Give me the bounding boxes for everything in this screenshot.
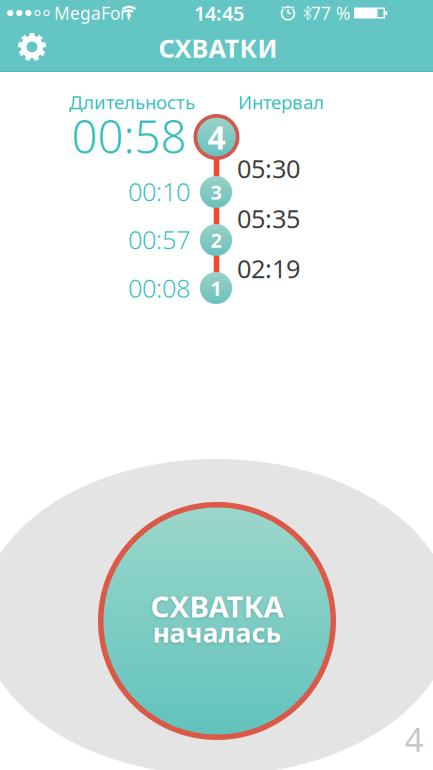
staticText: Интервал xyxy=(238,90,324,114)
staticText: MegaFon xyxy=(54,1,131,24)
staticText: 14:45 xyxy=(194,0,244,26)
staticText: 00:58 xyxy=(71,106,186,166)
button[interactable]: СХВАТКА xyxy=(98,502,336,740)
staticText: СХВАТКА xyxy=(150,586,283,625)
staticText: 05:35 xyxy=(237,202,300,235)
staticText: 4 xyxy=(207,116,225,158)
staticText: 00:10 xyxy=(128,175,190,208)
staticText: 77 % xyxy=(311,1,350,24)
staticText: Длительность xyxy=(69,90,195,114)
staticText: 1 xyxy=(210,275,221,301)
button[interactable]: Настройки xyxy=(10,25,54,69)
staticText: 00:57 xyxy=(128,223,190,256)
staticText: 02:19 xyxy=(237,252,300,285)
staticText: 4 xyxy=(404,717,423,761)
staticText: 2 xyxy=(210,227,221,253)
staticText: началась xyxy=(152,615,281,650)
staticText: СХВАТКИ xyxy=(158,31,277,65)
staticText: 00:08 xyxy=(128,271,190,305)
staticText: 3 xyxy=(210,179,221,205)
staticText: 05:30 xyxy=(237,152,300,185)
